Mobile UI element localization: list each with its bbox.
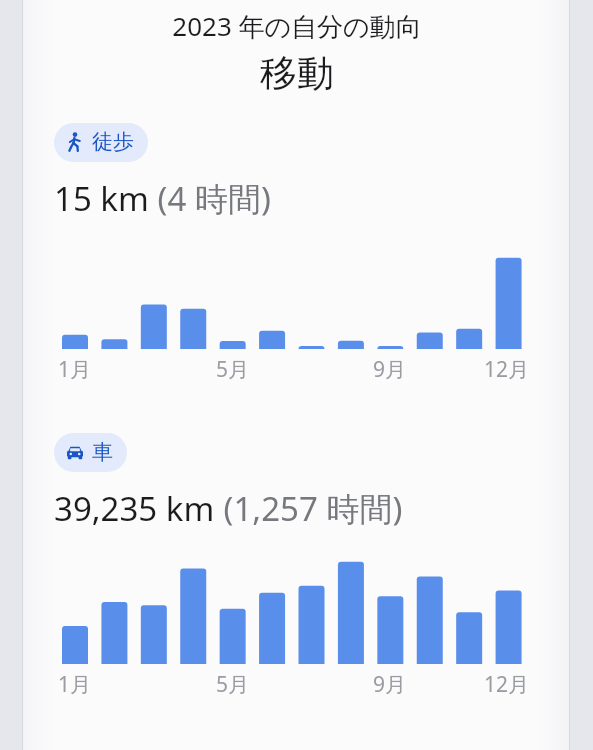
staticText: 39,235 km: [54, 486, 215, 531]
staticText: 1月: [58, 670, 92, 696]
button[interactable]: Walking: [54, 123, 148, 162]
staticText: (4 時間): [149, 176, 271, 221]
staticText: 移動: [260, 50, 334, 97]
staticText: (1,257 時間): [215, 486, 403, 531]
staticText: 5月: [216, 670, 250, 696]
staticText: 2023 年の自分の動向: [172, 8, 422, 44]
staticText: 12月: [484, 355, 530, 381]
button[interactable]: Driving: [54, 433, 127, 472]
staticText: 9月: [373, 355, 407, 381]
staticText: 9月: [373, 670, 407, 696]
staticText: 15 km: [54, 176, 149, 221]
staticText: 1月: [58, 355, 92, 381]
staticText: 5月: [216, 355, 250, 381]
other: Driving: [65, 442, 85, 462]
staticText: 車: [92, 439, 113, 465]
staticText: 徒歩: [92, 129, 134, 155]
other: Walking: [65, 132, 85, 152]
staticText: 12月: [484, 670, 530, 696]
